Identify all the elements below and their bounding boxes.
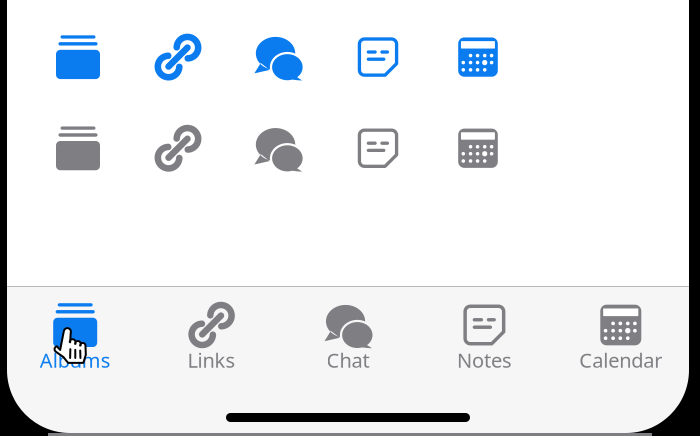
staticText: Calendar (579, 347, 662, 373)
button[interactable]: Calendar (553, 301, 689, 393)
staticText: Albums (40, 347, 111, 373)
staticText: Notes (457, 347, 512, 373)
button[interactable]: Albums (7, 301, 143, 393)
staticText: Chat (326, 347, 369, 373)
button[interactable]: Links (143, 301, 280, 393)
button[interactable]: Chat (280, 301, 416, 393)
button[interactable]: Notes (416, 301, 553, 393)
staticText: Links (188, 347, 236, 373)
